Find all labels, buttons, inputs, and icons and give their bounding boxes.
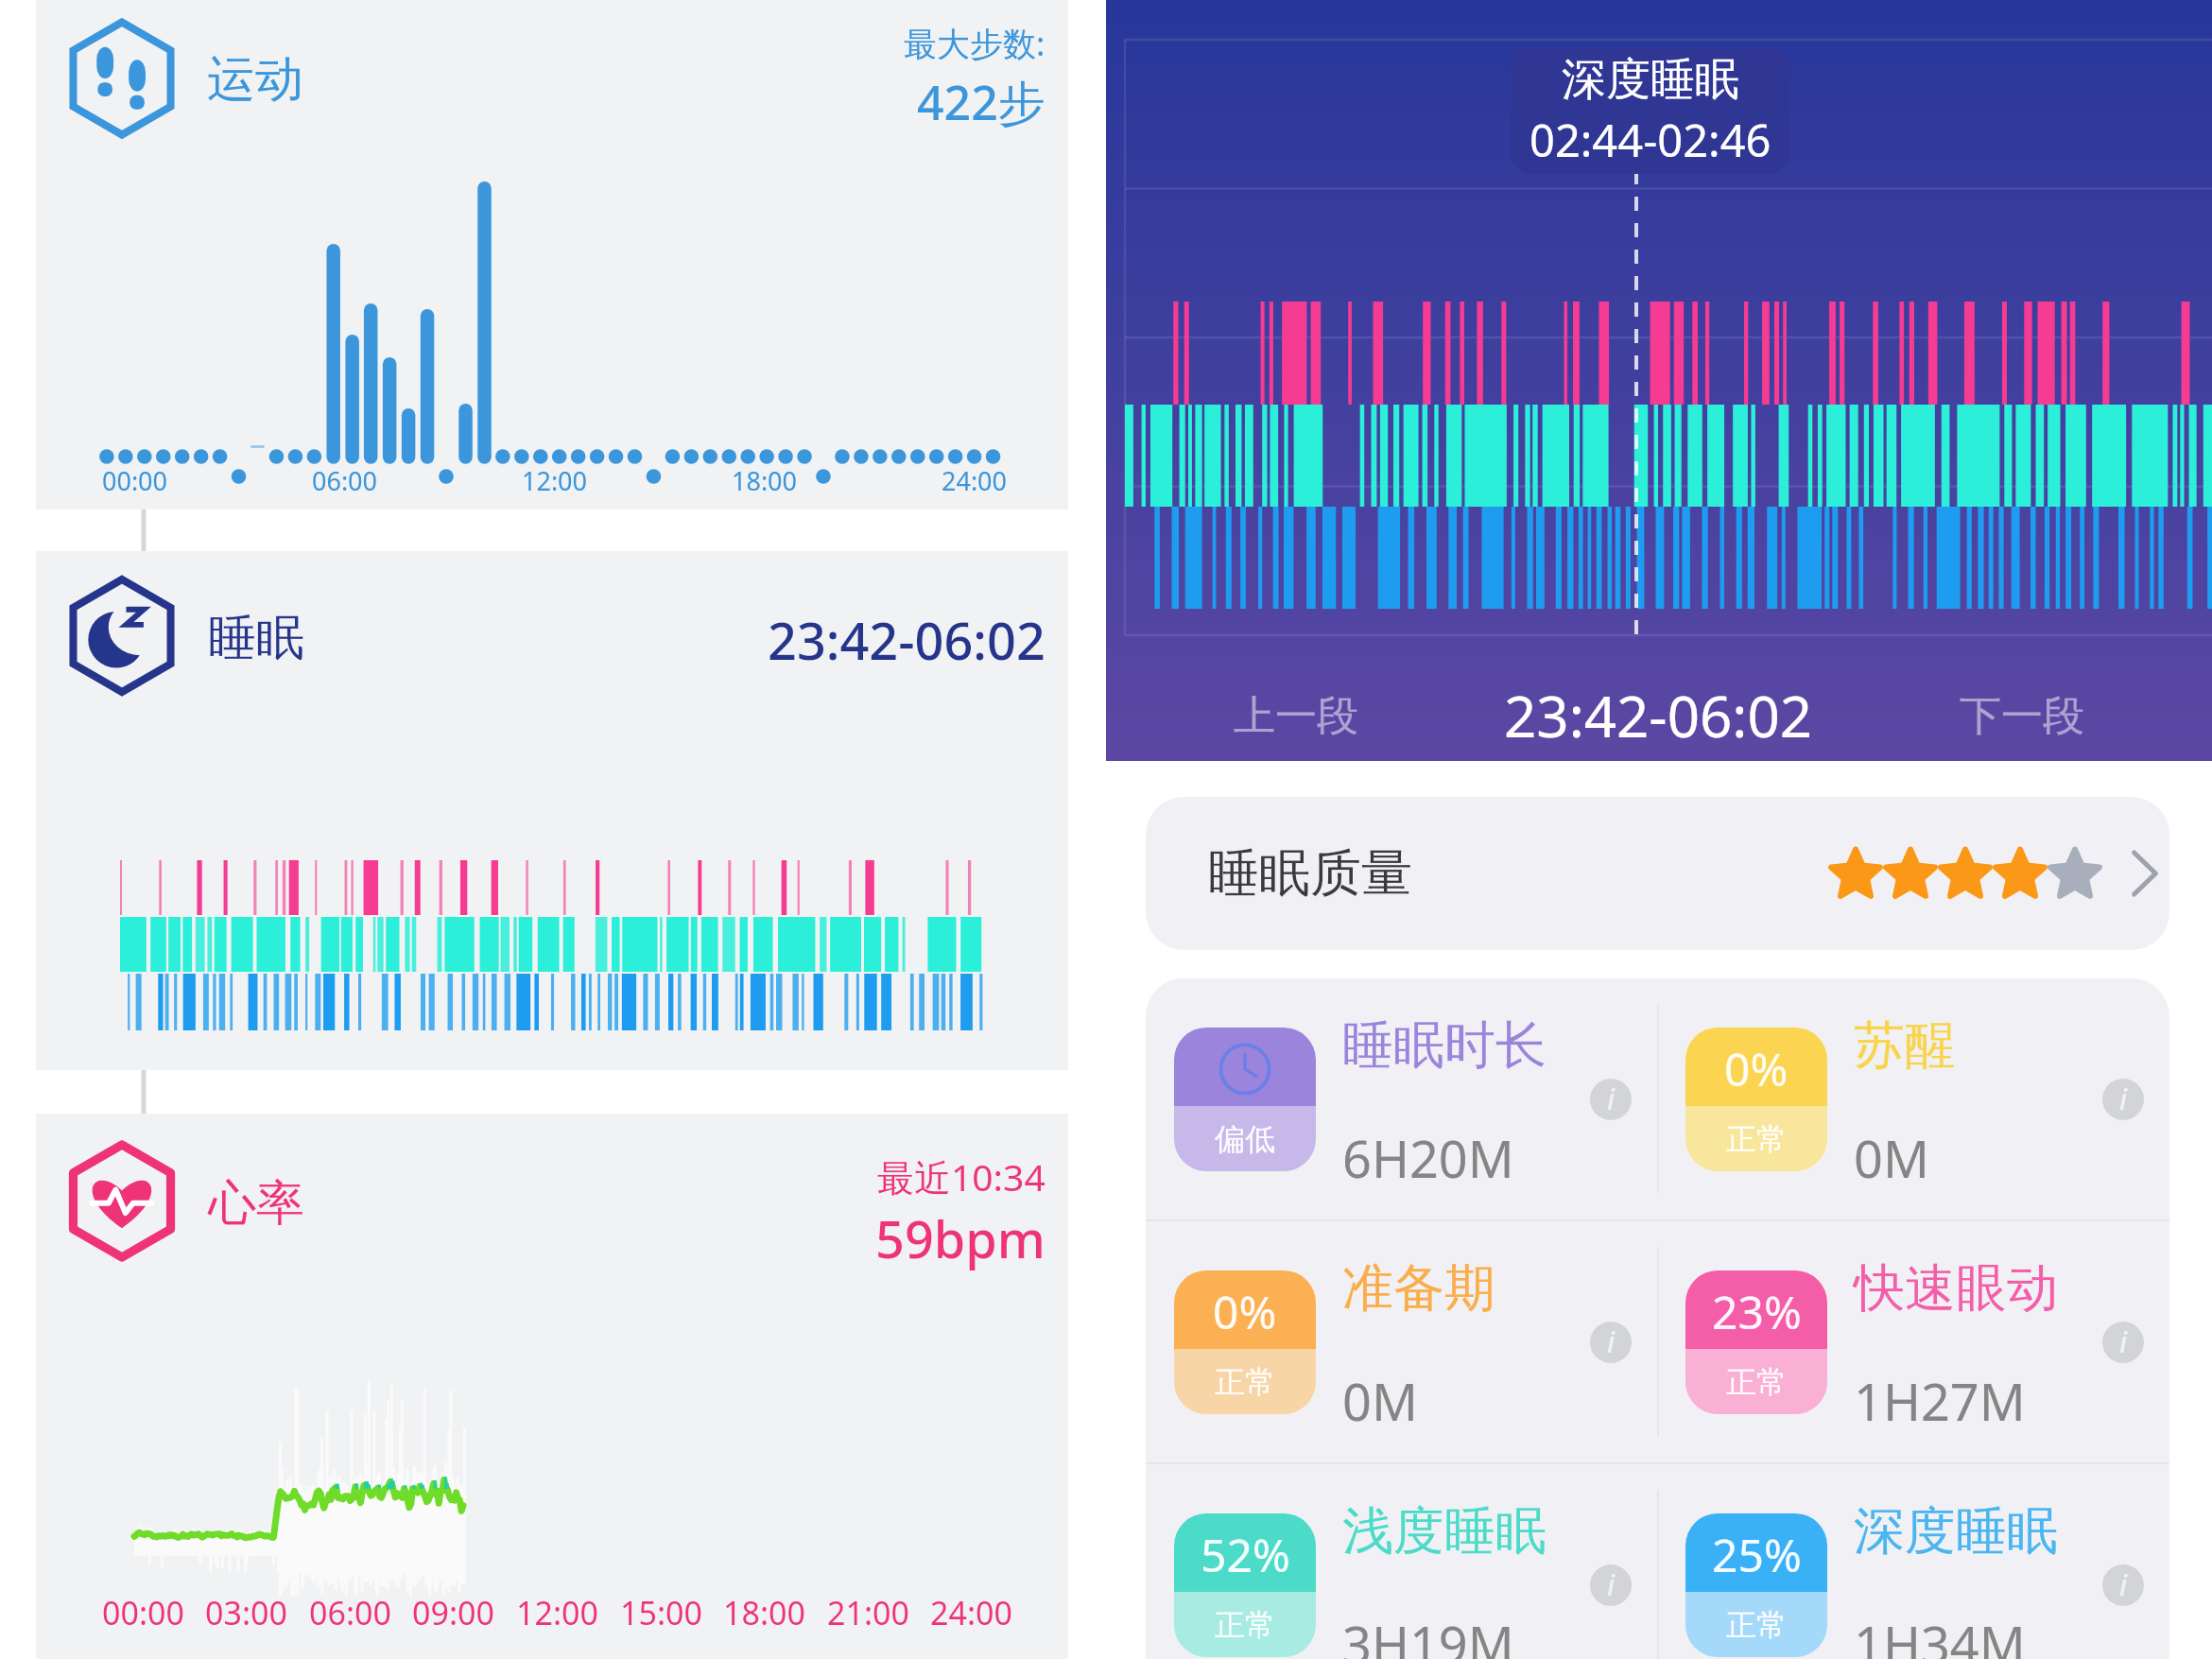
staticText: i (1607, 1565, 1616, 1604)
staticText: 正常 (1215, 1606, 1275, 1644)
staticText: 偏低 (1215, 1120, 1275, 1158)
button[interactable]: Info (1590, 1322, 1632, 1363)
staticText: 18:00 (732, 463, 798, 498)
staticText: 59bpm (875, 1203, 1046, 1273)
staticText: 最大步数: (904, 21, 1046, 66)
staticText: 18:00 (723, 1591, 805, 1634)
button[interactable]: Info (2102, 1079, 2144, 1120)
button[interactable]: 0% (1146, 1221, 1657, 1462)
staticText: 正常 (1215, 1363, 1275, 1401)
staticText: 正常 (1726, 1606, 1787, 1644)
staticText: 深度睡眠 (1854, 1499, 2058, 1564)
button[interactable]: 上一段 (1173, 664, 1419, 768)
staticText: 浅度睡眠 (1342, 1499, 1547, 1564)
staticText: 苏醒 (1854, 1013, 1956, 1078)
staticText: 12:00 (522, 463, 588, 498)
staticText: 24:00 (930, 1591, 1012, 1634)
button[interactable]: 运动 (36, 0, 1068, 510)
staticText: 25% (1712, 1524, 1802, 1585)
staticText: 下一段 (1960, 690, 2084, 742)
staticText: i (2119, 1565, 2128, 1604)
button[interactable]: Info (2102, 1322, 2144, 1363)
staticText: 6H20M (1342, 1123, 1514, 1193)
staticText: 52% (1201, 1524, 1290, 1585)
staticText: 0M (1342, 1366, 1418, 1436)
staticText: 23:42-06:02 (768, 605, 1046, 675)
staticText: 00:00 (102, 463, 168, 498)
button[interactable]: 25% (1657, 1464, 2169, 1659)
staticText: 00:00 (102, 1591, 184, 1634)
staticText: 422步 (917, 70, 1046, 134)
staticText: i (2119, 1322, 2128, 1361)
staticText: 0M (1854, 1123, 1929, 1193)
staticText: 1H34M (1854, 1609, 2026, 1659)
staticText: 21:00 (827, 1591, 909, 1634)
button[interactable]: 心率 (36, 1114, 1068, 1659)
staticText: 上一段 (1234, 690, 1358, 742)
staticText: i (2119, 1080, 2128, 1118)
button[interactable]: 深度睡眠 (1511, 48, 1789, 174)
button[interactable]: 0% (1657, 978, 2169, 1219)
staticText: 09:00 (412, 1591, 494, 1634)
staticText: 1H27M (1854, 1366, 2026, 1436)
staticText: 正常 (1726, 1120, 1787, 1158)
staticText: 06:00 (312, 463, 378, 498)
staticText: i (1607, 1322, 1616, 1361)
staticText: i (1607, 1080, 1616, 1118)
button[interactable]: 睡眠质量 (1146, 797, 2169, 950)
button[interactable]: 下一段 (1899, 664, 2145, 768)
button[interactable]: 睡眠 (36, 551, 1068, 1070)
staticText: 24:00 (942, 463, 1008, 498)
staticText: 睡眠质量 (1208, 841, 1412, 906)
staticText: 运动 (207, 49, 303, 110)
staticText: 睡眠时长 (1342, 1013, 1547, 1078)
staticText: 0% (1213, 1281, 1277, 1342)
staticText: 3H19M (1342, 1609, 1514, 1659)
staticText: 正常 (1726, 1363, 1787, 1401)
staticText: 深度睡眠 (1562, 52, 1739, 108)
staticText: 02:44-02:46 (1529, 110, 1771, 170)
staticText: 06:00 (309, 1591, 391, 1634)
button[interactable]: 偏低 (1146, 978, 1657, 1219)
staticText: 0% (1724, 1038, 1789, 1099)
button[interactable]: Open sleep quality details (2119, 836, 2169, 911)
staticText: 心率 (208, 1173, 304, 1234)
staticText: 准备期 (1342, 1256, 1495, 1321)
button[interactable]: Info (2102, 1564, 2144, 1606)
staticText: 23% (1712, 1281, 1802, 1342)
staticText: 睡眠 (208, 608, 304, 668)
staticText: 快速眼动 (1854, 1256, 2058, 1321)
staticText: 03:00 (205, 1591, 287, 1634)
staticText: 最近10:34 (877, 1151, 1046, 1201)
button[interactable]: 23% (1657, 1221, 2169, 1462)
button[interactable]: Info (1590, 1079, 1632, 1120)
button[interactable]: 52% (1146, 1464, 1657, 1659)
button[interactable]: Info (1590, 1564, 1632, 1606)
staticText: 15:00 (620, 1591, 702, 1634)
staticText: 23:42-06:02 (1504, 677, 1813, 754)
staticText: 12:00 (516, 1591, 598, 1634)
